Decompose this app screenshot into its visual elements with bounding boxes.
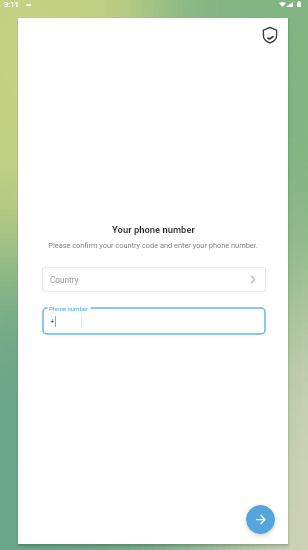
button[interactable]: Security	[256, 21, 284, 49]
staticText: Phone number	[49, 305, 88, 312]
staticText: Country	[50, 275, 79, 285]
button[interactable]: Phone number	[43, 308, 265, 334]
staticText: +	[50, 317, 55, 326]
staticText: Your phone number	[112, 224, 195, 235]
button[interactable]: Next	[246, 505, 275, 534]
staticText: Please confirm your country code and ent…	[48, 241, 258, 250]
staticText: 3:11	[4, 0, 19, 9]
button[interactable]: Country	[42, 267, 266, 292]
